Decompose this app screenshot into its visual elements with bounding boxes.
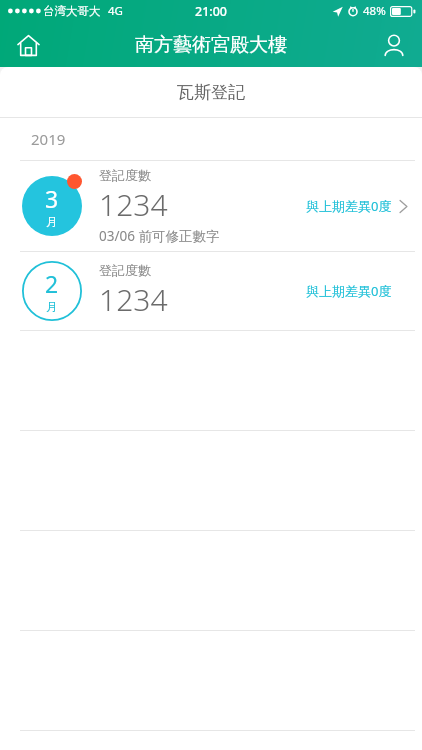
staticText: 2019: [31, 129, 66, 149]
staticText: 月: [46, 215, 58, 229]
staticText: 48%: [363, 3, 386, 19]
button[interactable]: 3: [0, 161, 422, 251]
staticText: 登記度數: [99, 262, 151, 278]
staticText: 瓦斯登記: [177, 82, 245, 103]
staticText: 4G: [108, 3, 123, 19]
button[interactable]: Home: [6, 23, 50, 67]
staticText: 1234: [99, 184, 168, 225]
staticText: 與上期差異0度: [306, 282, 392, 300]
staticText: 南方藝術宮殿大樓: [135, 33, 287, 57]
staticText: 03/06 前可修正數字: [99, 227, 220, 245]
staticText: 登記度數: [99, 167, 151, 183]
staticText: 1234: [99, 279, 168, 320]
staticText: 3: [45, 183, 59, 214]
staticText: 台湾大哥大: [43, 4, 101, 18]
staticText: 月: [46, 300, 58, 314]
button[interactable]: 2: [0, 252, 422, 330]
button[interactable]: Profile: [372, 23, 416, 67]
staticText: 21:00: [195, 3, 228, 20]
staticText: 與上期差異0度: [306, 197, 392, 215]
staticText: 2: [45, 268, 59, 299]
